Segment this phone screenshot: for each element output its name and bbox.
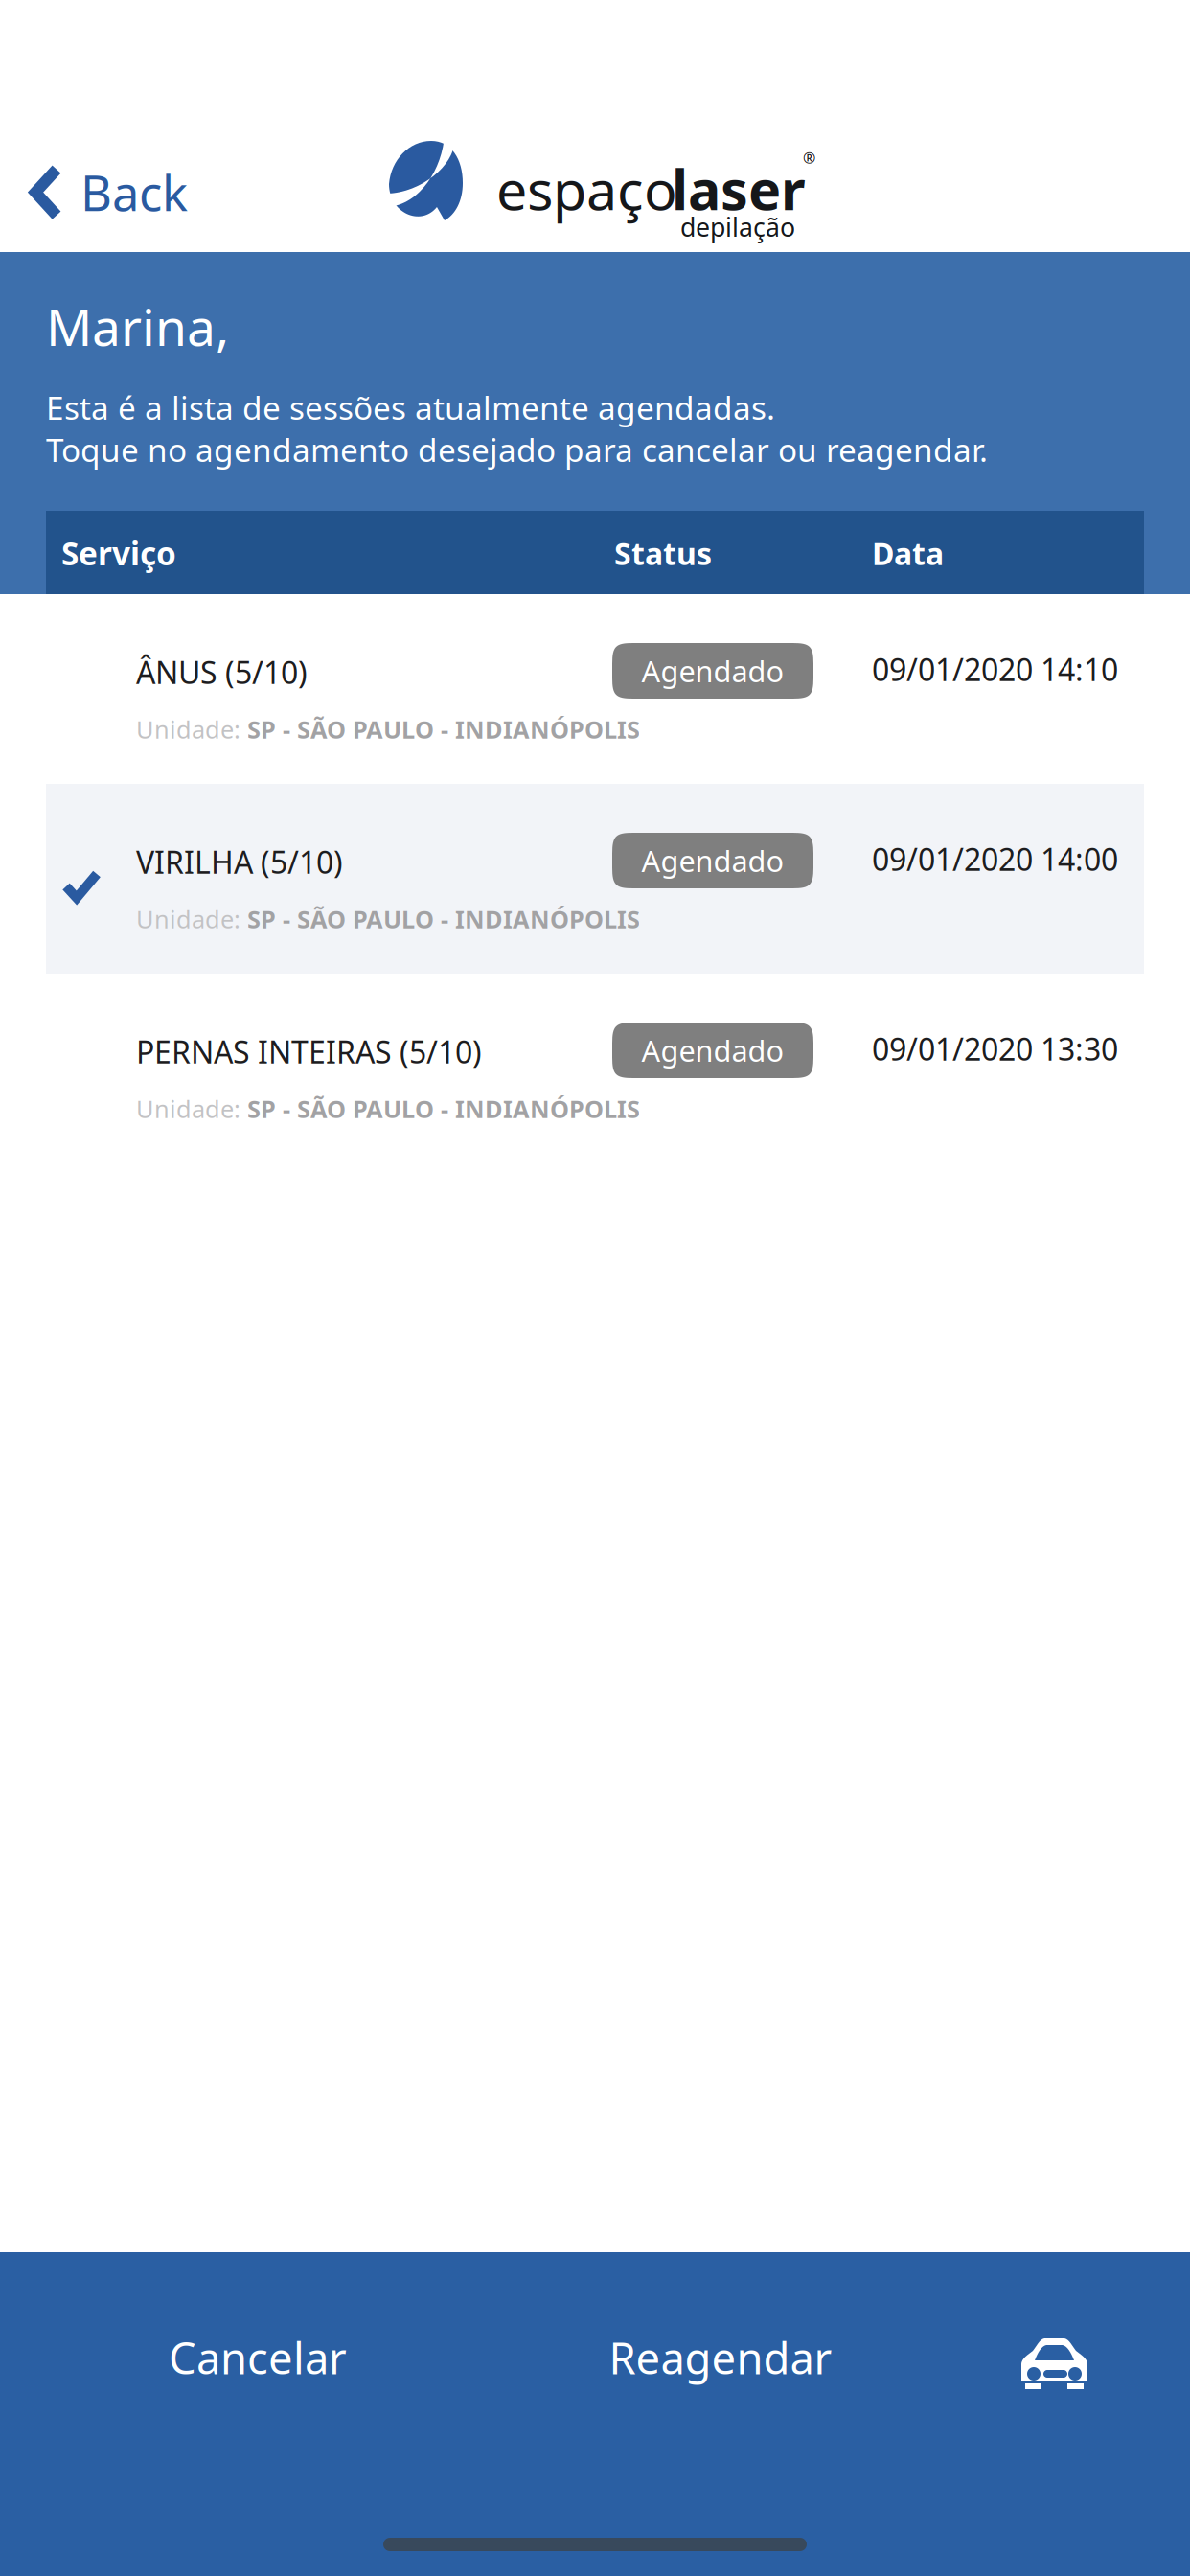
staticText: Agendado [641,1031,784,1070]
staticText: Cancelar [169,2329,347,2386]
button[interactable]: Back [0,139,211,246]
staticText: Data [872,533,944,574]
staticText: SP - SÃO PAULO - INDIANÓPOLIS [247,903,640,935]
staticText: SP - SÃO PAULO - INDIANÓPOLIS [247,1092,640,1125]
staticText: PERNAS INTEIRAS (5/10) [136,1031,482,1072]
staticText: espaço [496,152,677,225]
staticText: laser [672,152,806,225]
staticText: 09/01/2020 14:00 [872,839,1118,879]
staticText: Agendado [641,651,784,690]
staticText: ® [803,148,815,168]
staticText: Unidade: [136,713,247,745]
staticText: Status [614,533,712,574]
button[interactable]: VIRILHA (5/10) [0,784,1190,974]
staticText: Unidade: [136,1092,247,1125]
button[interactable]: ÂNUS (5/10) [0,594,1190,784]
staticText: Esta é a lista de sessões atualmente age… [46,386,775,429]
button[interactable]: Transporte [988,2308,1122,2419]
button[interactable]: Cancelar [114,2302,401,2413]
staticText: ÂNUS (5/10) [136,652,308,692]
staticText: Back [80,160,188,225]
staticText: Reagendar [609,2329,832,2386]
staticText: Unidade: [136,903,247,935]
staticText: depilação [680,210,795,244]
staticText: Marina, [46,292,229,360]
staticText: Toque no agendamento desejado para cance… [46,428,988,471]
button[interactable]: Reagendar [558,2302,883,2413]
button[interactable]: PERNAS INTEIRAS (5/10) [0,974,1190,1163]
staticText: 09/01/2020 13:30 [872,1028,1118,1069]
staticText: SP - SÃO PAULO - INDIANÓPOLIS [247,713,640,745]
staticText: Agendado [641,841,784,880]
staticText: Serviço [61,532,176,574]
staticText: 09/01/2020 14:10 [872,649,1118,690]
staticText: VIRILHA (5/10) [136,841,343,882]
